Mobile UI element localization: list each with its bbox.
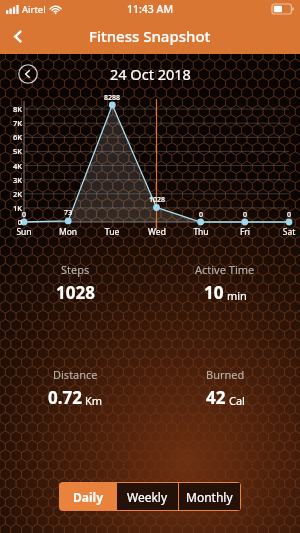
- staticText: Mon: [52, 226, 84, 238]
- staticText: Cal: [229, 393, 245, 408]
- staticText: 8288: [96, 93, 128, 103]
- staticText: 10: [204, 281, 224, 304]
- button[interactable]: Steps: [0, 262, 150, 304]
- staticText: 42: [206, 386, 226, 409]
- staticText: Airtel: [22, 3, 46, 16]
- staticText: 0.72: [48, 386, 82, 409]
- staticText: Daily: [73, 489, 103, 505]
- staticText: 8K: [1, 104, 22, 114]
- staticText: Wed: [141, 226, 173, 238]
- staticText: Fri: [229, 226, 261, 238]
- button[interactable]: Distance: [0, 367, 150, 409]
- button[interactable]: Active Time: [150, 262, 300, 304]
- staticText: 0: [185, 210, 217, 220]
- staticText: Steps: [61, 262, 90, 277]
- staticText: Monthly: [186, 489, 233, 505]
- button[interactable]: Weekly: [117, 483, 178, 510]
- staticText: Fitness Snapshot: [89, 26, 211, 46]
- staticText: Km: [85, 393, 103, 408]
- staticText: 1028: [56, 281, 95, 304]
- button[interactable]: Burned: [150, 367, 300, 409]
- button[interactable]: Monthly: [179, 483, 240, 510]
- staticText: 2K: [1, 189, 22, 199]
- staticText: 11:43 AM: [127, 2, 174, 16]
- staticText: 1K: [1, 203, 22, 213]
- staticText: 73: [52, 208, 84, 218]
- staticText: 0: [8, 210, 40, 220]
- staticText: Active Time: [195, 262, 255, 277]
- staticText: Tue: [96, 226, 128, 238]
- staticText: Thu: [185, 226, 217, 238]
- button[interactable]: Daily: [60, 483, 116, 510]
- staticText: 0: [273, 210, 300, 220]
- staticText: 0: [1, 217, 22, 227]
- staticText: 3K: [1, 175, 22, 185]
- staticText: min: [227, 288, 247, 303]
- staticText: 4K: [1, 161, 22, 171]
- staticText: 7K: [1, 118, 22, 128]
- staticText: Sat: [273, 226, 300, 238]
- staticText: 5K: [1, 146, 22, 156]
- button[interactable]: Back: [0, 18, 36, 54]
- staticText: Distance: [53, 367, 98, 382]
- staticText: 1028: [141, 195, 173, 205]
- staticText: Burned: [206, 367, 245, 382]
- staticText: 0: [229, 210, 261, 220]
- staticText: Sun: [8, 226, 40, 238]
- staticText: 6K: [1, 132, 22, 142]
- staticText: Weekly: [127, 489, 168, 505]
- button[interactable]: Previous day: [18, 64, 38, 84]
- staticText: 24 Oct 2018: [110, 64, 191, 84]
